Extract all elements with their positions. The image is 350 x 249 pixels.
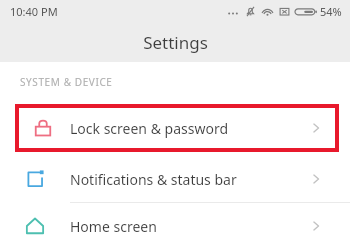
staticText: SYSTEM & DEVICE bbox=[20, 75, 113, 89]
other: Open bbox=[309, 121, 323, 135]
staticText: 54% bbox=[320, 4, 342, 19]
button[interactable]: Lock screen & password bbox=[15, 104, 339, 152]
staticText: 10:40 PM bbox=[10, 4, 58, 19]
other: Open bbox=[309, 219, 323, 233]
button[interactable]: Home screen bbox=[0, 203, 350, 249]
staticText: Settings bbox=[143, 31, 208, 54]
staticText: Home screen bbox=[70, 217, 157, 236]
staticText: Lock screen & password bbox=[70, 119, 229, 138]
other: Open bbox=[309, 172, 323, 186]
button[interactable]: Notifications & status bar bbox=[0, 156, 350, 203]
staticText: Notifications & status bar bbox=[70, 170, 237, 189]
